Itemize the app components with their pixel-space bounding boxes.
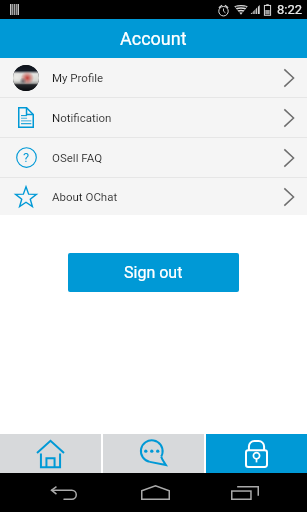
button[interactable]: Home xyxy=(0,434,101,473)
button[interactable]: Back xyxy=(44,473,84,512)
staticText: Sign out xyxy=(124,263,183,282)
staticText: About OChat xyxy=(52,190,118,203)
button[interactable]: Home xyxy=(135,473,175,512)
staticText: Notification xyxy=(52,111,112,124)
button[interactable]: Notification xyxy=(0,98,307,138)
staticText: ? xyxy=(23,150,30,165)
button[interactable]: Sign out xyxy=(68,253,239,292)
staticText: My Profile xyxy=(52,71,104,84)
button[interactable]: Chat xyxy=(103,434,204,473)
button[interactable]: ? xyxy=(0,138,307,178)
staticText: OSell FAQ xyxy=(52,151,103,164)
button[interactable]: Account xyxy=(206,434,307,473)
button[interactable]: My Profile xyxy=(0,58,307,98)
staticText: Account xyxy=(120,28,187,49)
button[interactable]: Recents xyxy=(225,473,265,512)
button[interactable]: About OChat xyxy=(0,178,307,215)
staticText: 8:22 xyxy=(277,2,303,17)
